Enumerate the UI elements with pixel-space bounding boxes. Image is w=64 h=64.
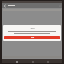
staticText: Title (30, 27, 35, 30)
staticText: OK (31, 36, 34, 39)
button[interactable]: Back (3, 4, 7, 8)
button[interactable]: Home (15, 60, 18, 63)
button[interactable]: Title (3, 25, 61, 41)
button[interactable]: Search (31, 60, 34, 63)
button[interactable]: Profile (46, 60, 49, 63)
button[interactable]: OK (4, 36, 60, 39)
